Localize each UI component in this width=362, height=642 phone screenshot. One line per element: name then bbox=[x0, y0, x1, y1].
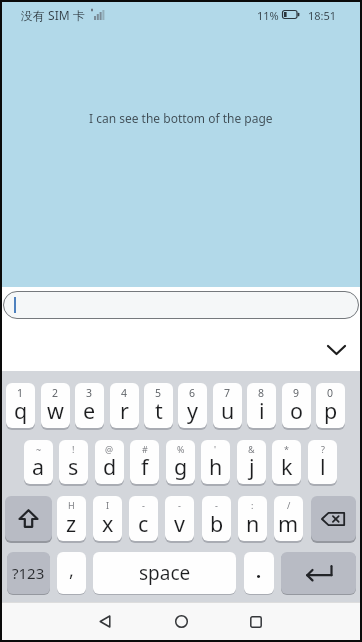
staticText: * bbox=[284, 443, 289, 455]
staticText: ? bbox=[321, 443, 325, 455]
staticText: w bbox=[47, 396, 64, 425]
button[interactable] bbox=[5, 496, 52, 541]
staticText: / bbox=[287, 499, 291, 511]
button[interactable]: * bbox=[272, 440, 301, 484]
button[interactable]: - bbox=[202, 496, 231, 541]
staticText: ! bbox=[72, 443, 75, 455]
button[interactable]: - bbox=[165, 496, 194, 541]
staticText: 5 bbox=[155, 386, 162, 400]
button[interactable]: 0 bbox=[316, 383, 345, 428]
staticText: 3 bbox=[86, 386, 93, 400]
staticText: 9 bbox=[293, 386, 300, 400]
staticText: . bbox=[256, 559, 262, 584]
button[interactable] bbox=[242, 608, 270, 635]
staticText: m bbox=[278, 509, 299, 538]
button[interactable]: ! bbox=[59, 440, 88, 484]
button[interactable]: @ bbox=[95, 440, 124, 484]
staticText: l bbox=[320, 452, 326, 481]
button[interactable]: 6 bbox=[178, 383, 207, 428]
button[interactable]: % bbox=[166, 440, 195, 484]
staticText: # bbox=[142, 443, 148, 455]
staticText: t bbox=[155, 396, 163, 425]
button[interactable] bbox=[167, 608, 195, 635]
staticText: b bbox=[210, 509, 224, 538]
button[interactable]: & bbox=[237, 440, 266, 484]
button[interactable]: ' bbox=[201, 440, 230, 484]
button[interactable]: I bbox=[93, 496, 122, 541]
staticText: 8 bbox=[258, 386, 265, 400]
staticText: p bbox=[324, 396, 338, 425]
staticText: 11% bbox=[257, 8, 279, 23]
button[interactable]: - bbox=[129, 496, 158, 541]
button[interactable]: H bbox=[57, 496, 86, 541]
button[interactable]: 4 bbox=[110, 383, 139, 428]
button[interactable] bbox=[311, 496, 356, 541]
button[interactable]: : bbox=[238, 496, 267, 541]
staticText: space bbox=[139, 560, 191, 586]
button[interactable]: # bbox=[130, 440, 159, 484]
staticText: i bbox=[259, 396, 265, 425]
staticText: H bbox=[68, 499, 75, 511]
staticText: e bbox=[83, 396, 96, 425]
staticText: x bbox=[102, 509, 114, 538]
staticText: f bbox=[141, 452, 149, 481]
staticText: d bbox=[103, 452, 117, 481]
staticText: a bbox=[32, 452, 45, 481]
button[interactable]: , bbox=[57, 552, 86, 594]
button[interactable]: 1 bbox=[6, 383, 35, 428]
button[interactable] bbox=[320, 338, 354, 362]
staticText: 6 bbox=[189, 386, 196, 400]
staticText: 1 bbox=[17, 386, 24, 400]
button[interactable] bbox=[90, 608, 119, 635]
button[interactable]: 5 bbox=[144, 383, 173, 428]
staticText: I bbox=[106, 499, 110, 511]
staticText: - bbox=[142, 499, 145, 511]
staticText: j bbox=[249, 452, 255, 481]
staticText: & bbox=[248, 443, 255, 455]
button[interactable] bbox=[281, 552, 356, 594]
staticText: ~ bbox=[36, 443, 42, 455]
staticText: 7 bbox=[224, 386, 231, 400]
staticText: z bbox=[66, 509, 77, 538]
staticText: % bbox=[177, 443, 185, 455]
staticText: h bbox=[209, 452, 223, 481]
staticText: 2 bbox=[52, 386, 59, 400]
button[interactable]: ~ bbox=[24, 440, 53, 484]
staticText: s bbox=[68, 452, 79, 481]
staticText: o bbox=[290, 396, 304, 425]
button[interactable]: space bbox=[93, 552, 236, 594]
staticText: v bbox=[174, 509, 185, 538]
staticText: k bbox=[281, 452, 293, 481]
staticText: - bbox=[215, 499, 218, 511]
staticText: g bbox=[174, 452, 188, 481]
button[interactable]: . bbox=[244, 552, 274, 594]
staticText: : bbox=[251, 499, 254, 511]
staticText: q bbox=[14, 396, 28, 425]
staticText: ' bbox=[214, 443, 217, 455]
button[interactable]: ?123 bbox=[7, 552, 50, 594]
staticText: u bbox=[221, 396, 235, 425]
staticText: c bbox=[138, 509, 149, 538]
button[interactable]: 9 bbox=[282, 383, 311, 428]
staticText: - bbox=[178, 499, 181, 511]
staticText: 4 bbox=[121, 386, 128, 400]
button[interactable] bbox=[3, 291, 359, 319]
staticText: 0 bbox=[327, 386, 334, 400]
staticText: , bbox=[69, 558, 74, 583]
button[interactable]: 8 bbox=[247, 383, 276, 428]
staticText: 没有 SIM 卡 bbox=[21, 7, 85, 23]
staticText: @ bbox=[105, 443, 114, 455]
staticText: r bbox=[120, 396, 129, 425]
button[interactable]: ? bbox=[308, 440, 337, 484]
staticText: n bbox=[246, 509, 260, 538]
staticText: I can see the bottom of the page bbox=[89, 110, 273, 126]
button[interactable]: 2 bbox=[41, 383, 70, 428]
staticText: 18:51 bbox=[308, 8, 337, 23]
staticText: y bbox=[187, 396, 198, 425]
staticText: ?123 bbox=[12, 563, 45, 583]
button[interactable]: / bbox=[274, 496, 303, 541]
button[interactable]: 7 bbox=[213, 383, 242, 428]
button[interactable]: 3 bbox=[75, 383, 104, 428]
